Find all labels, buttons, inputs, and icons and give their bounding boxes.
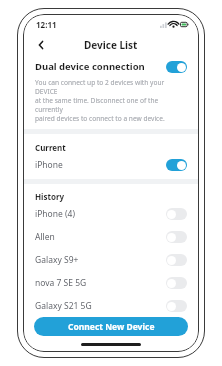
staticText: at the same time. Disconnect one of the … [35, 96, 187, 114]
button[interactable]: nova 7 SE 5G [24, 271, 198, 294]
staticText: iPhone [35, 159, 63, 171]
button[interactable]: Allen [24, 225, 198, 248]
button[interactable]: Disabled [166, 254, 187, 266]
staticText: Xperia XZs [35, 323, 77, 335]
button[interactable]: Back [32, 36, 50, 54]
button[interactable]: Galaxy S21 5G [24, 294, 198, 317]
button[interactable]: Enabled [166, 61, 187, 73]
button[interactable]: Disabled [166, 323, 187, 335]
button[interactable]: Connect New Device [34, 317, 188, 336]
staticText: nova 7 SE 5G [35, 277, 87, 289]
button[interactable]: Disabled [166, 300, 187, 312]
staticText: Device List [84, 38, 138, 52]
staticText: 12:11 [36, 19, 57, 30]
staticText: Current [35, 142, 66, 153]
staticText: paired devices to connect to a new devic… [35, 114, 165, 123]
staticText: iPhone (4) [35, 208, 75, 220]
button[interactable]: Disabled [166, 231, 187, 243]
staticText: Connect New Device [68, 321, 155, 333]
staticText: Galaxy S9+ [35, 254, 79, 266]
button[interactable]: iPhone (4) [24, 202, 198, 225]
button[interactable]: Enabled [166, 159, 187, 171]
button[interactable]: Galaxy S9+ [24, 248, 198, 271]
staticText: You can connect up to 2 devices with you… [35, 78, 187, 96]
staticText: History [35, 191, 65, 202]
staticText: Dual device connection [35, 60, 145, 73]
button[interactable]: Xperia XZs [24, 317, 198, 340]
staticText: Allen [35, 231, 55, 243]
staticText: Galaxy S21 5G [35, 300, 92, 312]
button[interactable]: iPhone [24, 153, 198, 176]
button[interactable]: Disabled [166, 208, 187, 220]
button[interactable]: Disabled [166, 277, 187, 289]
